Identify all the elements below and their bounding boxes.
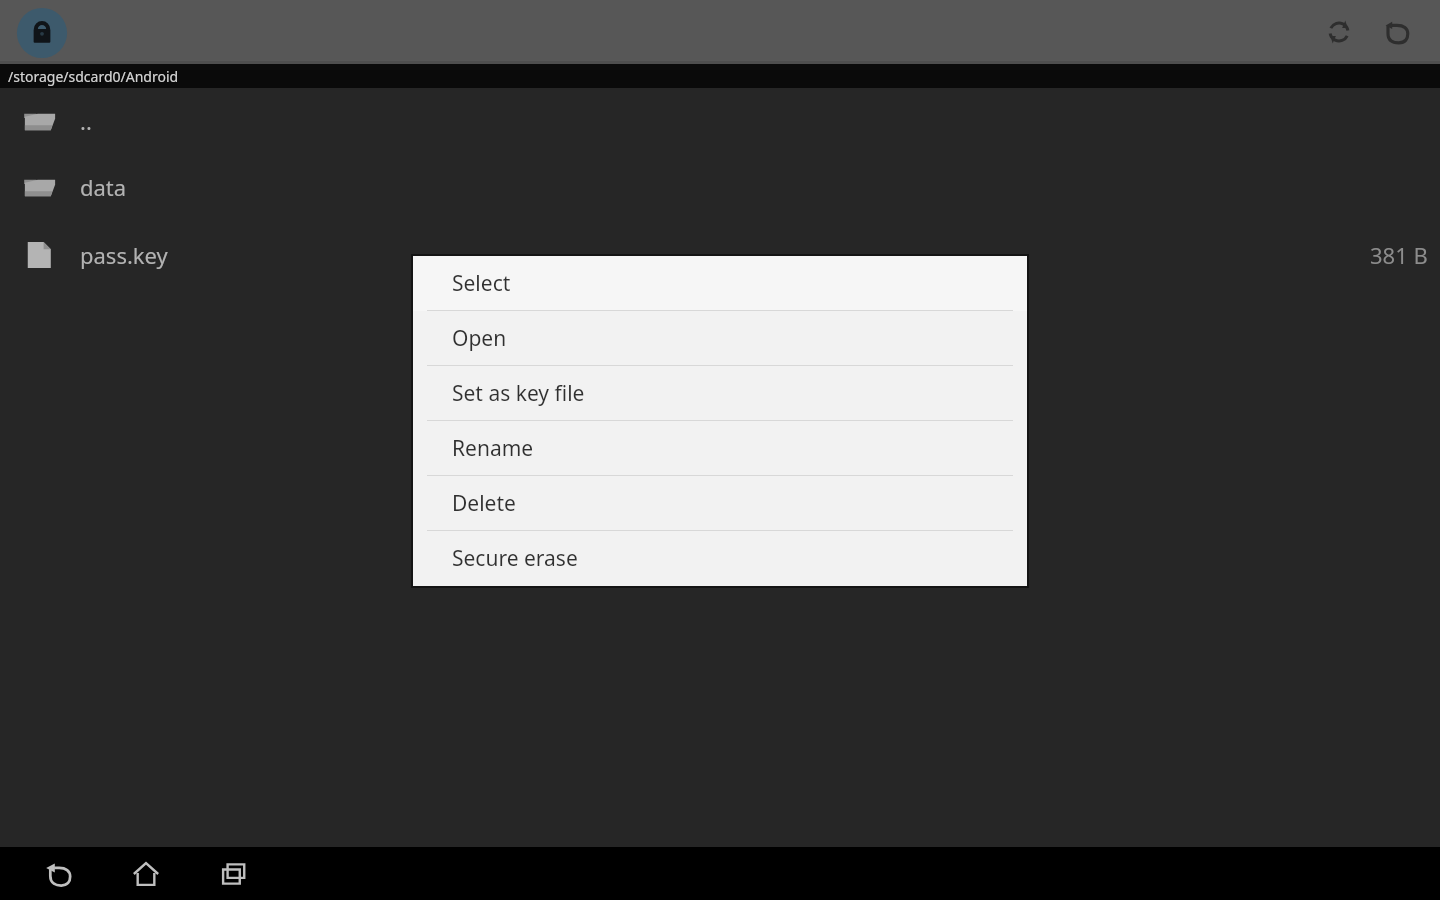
staticText: /storage/sdcard0/Android: [8, 67, 179, 86]
staticText: Set as key file: [452, 379, 585, 408]
button[interactable]: Back: [1368, 0, 1426, 64]
button[interactable]: App home: [14, 5, 70, 61]
staticText: 381 B: [1370, 240, 1428, 270]
button[interactable]: Recent apps: [190, 847, 278, 900]
button[interactable]: Back: [14, 847, 102, 900]
button[interactable]: Open: [413, 311, 1027, 366]
staticText: Select: [452, 269, 511, 298]
button[interactable]: Select: [413, 256, 1027, 311]
button[interactable]: Refresh: [1310, 0, 1368, 64]
button[interactable]: data: [0, 154, 1440, 220]
button[interactable]: Delete: [413, 476, 1027, 531]
button[interactable]: Set as key file: [413, 366, 1027, 421]
button[interactable]: Rename: [413, 421, 1027, 476]
button[interactable]: Secure erase: [413, 531, 1027, 586]
button[interactable]: ..: [0, 88, 1440, 154]
staticText: data: [80, 172, 1440, 202]
button[interactable]: pass.key: [0, 220, 1440, 290]
staticText: Rename: [452, 434, 534, 463]
button[interactable]: Home: [102, 847, 190, 900]
staticText: Open: [452, 324, 507, 353]
staticText: Delete: [452, 489, 516, 518]
staticText: Secure erase: [452, 544, 578, 573]
staticText: pass.key: [80, 240, 1370, 270]
